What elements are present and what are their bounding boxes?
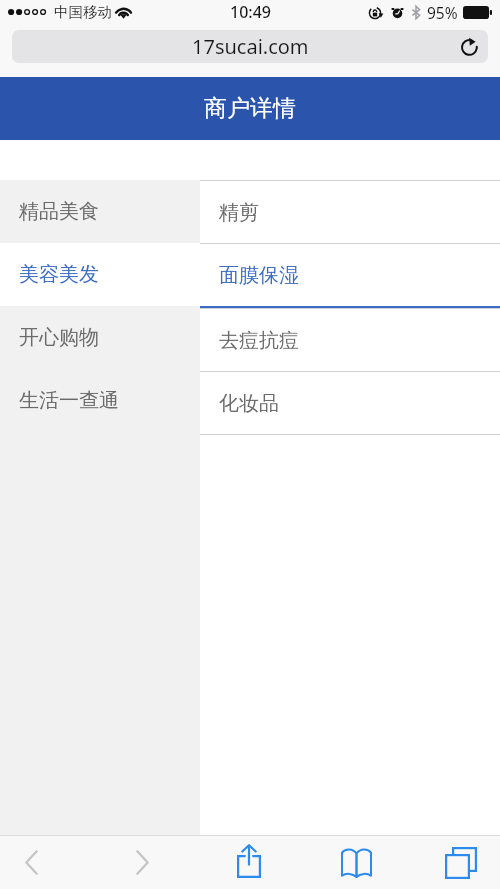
button[interactable]: 去痘抗痘 bbox=[200, 308, 500, 371]
staticText: 化妆品 bbox=[219, 391, 279, 416]
staticText: 10:49 bbox=[230, 1, 271, 23]
button[interactable]: 17sucai.com bbox=[12, 30, 488, 63]
staticText: 精剪 bbox=[219, 200, 259, 225]
button[interactable]: Forward bbox=[116, 836, 168, 889]
button[interactable]: 精剪 bbox=[200, 180, 500, 243]
staticText: 生活一查通 bbox=[19, 388, 119, 413]
staticText: 精品美食 bbox=[19, 199, 99, 224]
staticText: 美容美发 bbox=[19, 262, 99, 287]
staticText: 中国移动 bbox=[54, 3, 112, 21]
staticText: 去痘抗痘 bbox=[219, 328, 299, 353]
button[interactable]: Tabs bbox=[435, 836, 487, 889]
button[interactable]: 开心购物 bbox=[0, 306, 200, 369]
button[interactable]: Back bbox=[5, 836, 57, 889]
button[interactable]: 美容美发 bbox=[0, 243, 200, 306]
staticText: 面膜保湿 bbox=[219, 263, 299, 288]
staticText: 开心购物 bbox=[19, 325, 99, 350]
button[interactable]: 面膜保湿 bbox=[200, 243, 500, 308]
button[interactable]: 精品美食 bbox=[0, 180, 200, 243]
button[interactable]: 化妆品 bbox=[200, 371, 500, 434]
staticText: 商户详情 bbox=[204, 94, 296, 123]
staticText: 17sucai.com bbox=[192, 33, 309, 60]
staticText: 95% bbox=[427, 2, 458, 23]
button[interactable]: Share bbox=[223, 834, 275, 887]
button[interactable]: 生活一查通 bbox=[0, 369, 200, 432]
button[interactable]: Bookmarks bbox=[330, 836, 382, 889]
button[interactable]: Reload bbox=[455, 34, 481, 60]
